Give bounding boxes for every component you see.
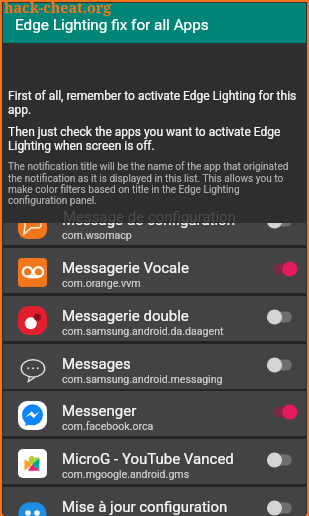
staticText: Messages: [62, 355, 131, 373]
button[interactable]: Mise à jour configuration: [3, 487, 306, 516]
button[interactable]: Messagerie Vocale: [3, 248, 306, 293]
button[interactable]: Disabled toggle: [266, 305, 298, 329]
staticText: com.wsomacp: [62, 229, 132, 241]
button[interactable]: Disabled toggle: [266, 353, 298, 377]
staticText: Messenger: [62, 402, 137, 420]
staticText: Messagerie Vocale: [62, 259, 189, 277]
staticText: First of all, remember to activate Edge …: [8, 89, 301, 117]
staticText: Message de configuration: [63, 208, 236, 226]
button[interactable]: Messenger: [3, 391, 306, 436]
staticText: MicroG - YouTube Vanced: [62, 450, 234, 468]
button[interactable]: Disabled toggle: [266, 496, 298, 516]
button[interactable]: Disabled toggle: [266, 223, 298, 233]
button[interactable]: Messagerie double: [3, 296, 306, 341]
staticText: com.samsung.android.messaging: [62, 373, 223, 385]
staticText: Message de configuration: [62, 223, 235, 229]
button[interactable]: Edge Lighting fix for all Apps: [3, 3, 306, 43]
staticText: com.facebook.orca: [62, 420, 154, 432]
staticText: Mise à jour configuration: [62, 498, 228, 516]
button[interactable]: Enabled toggle: [266, 257, 298, 281]
staticText: The notification title will be the name …: [8, 161, 301, 206]
staticText: com.mgoogle.android.gms: [62, 468, 190, 480]
staticText: com.samsung.android.da.daagent: [62, 325, 224, 337]
button[interactable]: MicroG - YouTube Vanced: [3, 439, 306, 484]
staticText: Then just check the apps you want to act…: [8, 125, 301, 153]
staticText: hack-cheat.org: [4, 0, 112, 17]
staticText: Edge Lighting fix for all Apps: [15, 16, 209, 34]
button[interactable]: Messages: [3, 344, 306, 389]
staticText: Messagerie double: [62, 307, 189, 325]
button[interactable]: Disabled toggle: [266, 448, 298, 472]
button[interactable]: Enabled toggle: [266, 400, 298, 424]
button[interactable]: Message de configuration: [3, 223, 306, 245]
staticText: com.orange.vvm: [62, 277, 141, 289]
